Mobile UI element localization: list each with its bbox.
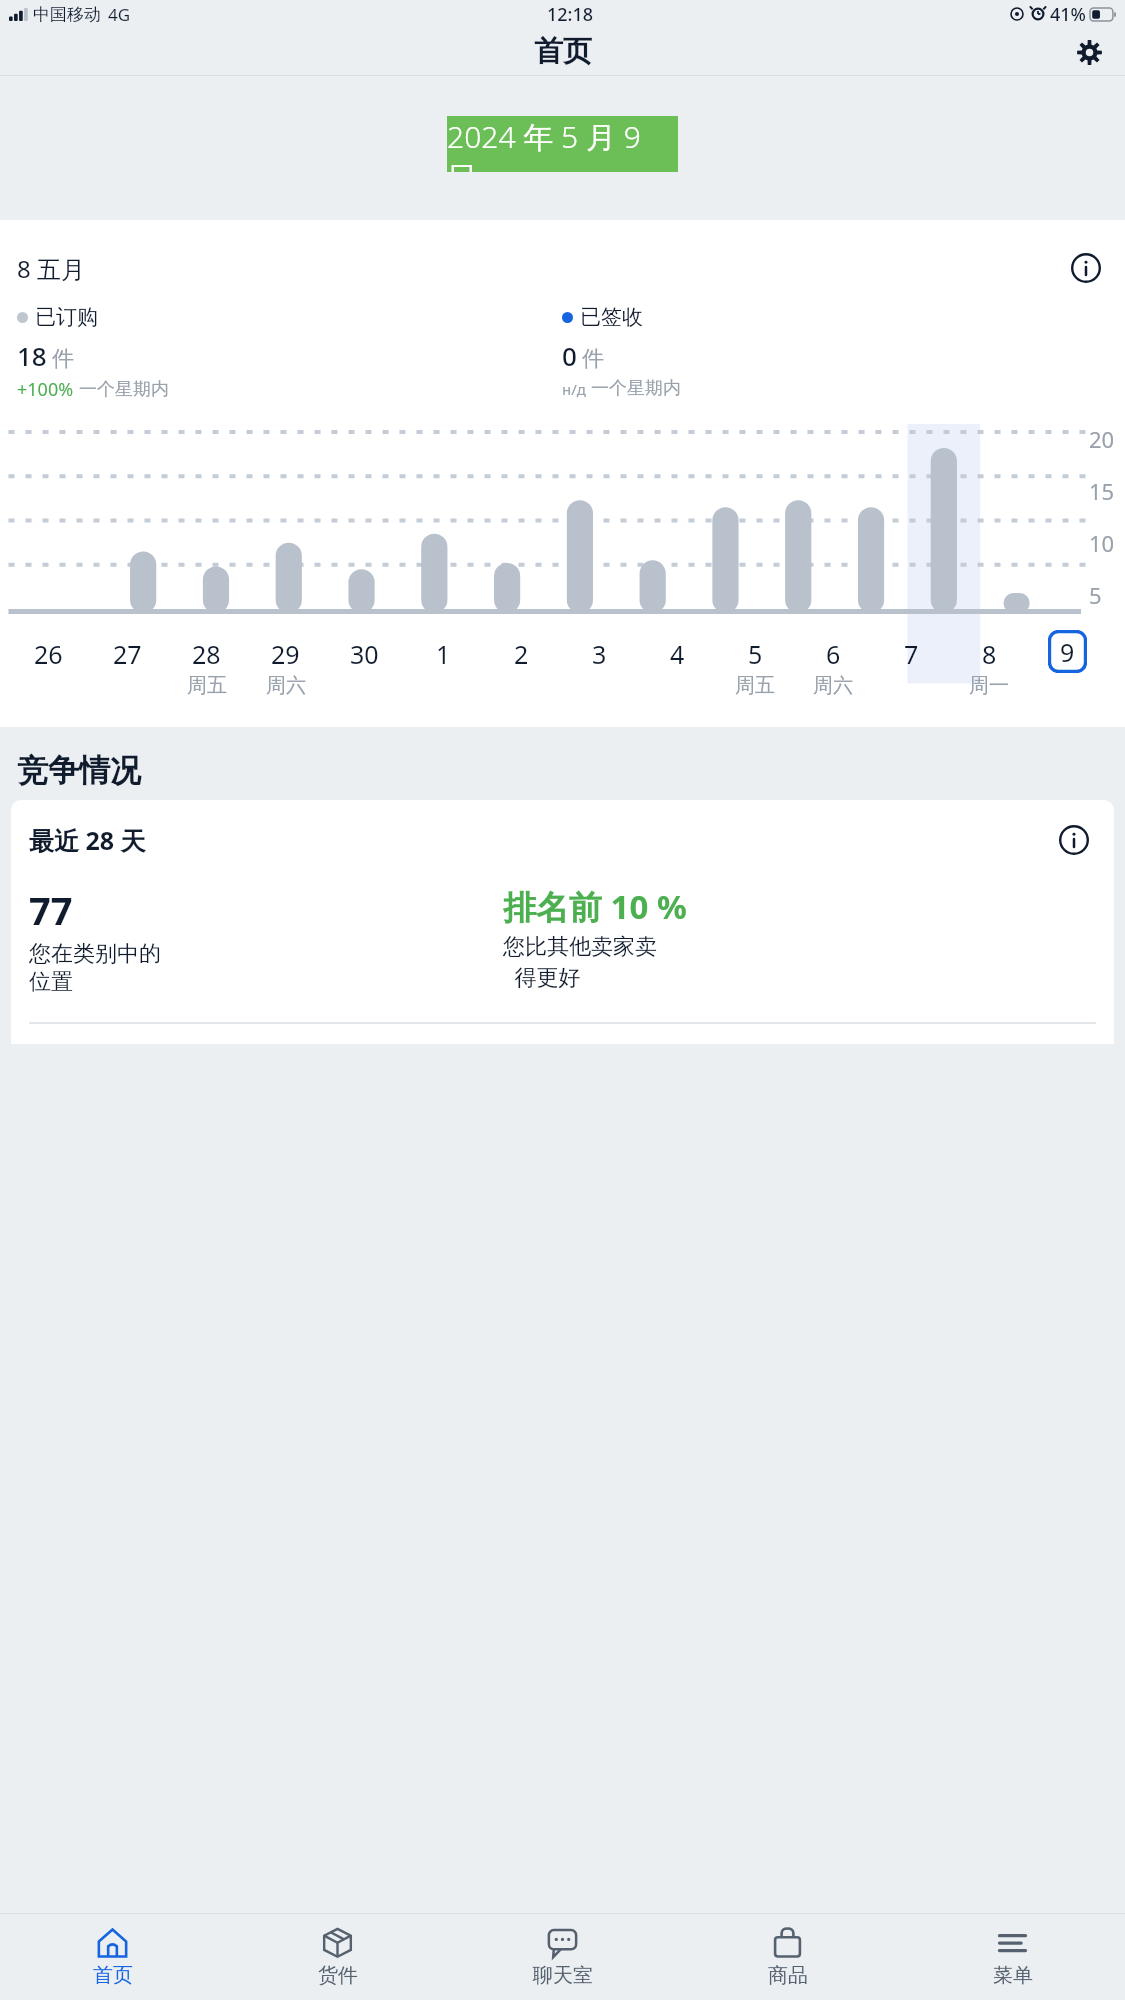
- button[interactable]: 信息: [1052, 818, 1096, 862]
- staticText: 件: [582, 345, 604, 373]
- staticText: 件: [52, 345, 74, 373]
- staticText: 最近 28 天: [29, 823, 146, 857]
- staticText: 2024 年 5 月 9 日: [447, 116, 678, 172]
- staticText: 26: [34, 637, 63, 671]
- staticText: 菜单: [993, 1963, 1033, 1988]
- staticText: 竞争情况: [17, 751, 141, 790]
- staticText: 周五: [735, 673, 775, 698]
- staticText: 位置: [29, 968, 73, 996]
- staticText: 周五: [187, 673, 227, 698]
- staticText: 77: [29, 884, 73, 936]
- staticText: 周一: [969, 673, 1009, 698]
- staticText: 15: [1089, 476, 1115, 506]
- staticText: 一个星期内: [591, 377, 681, 400]
- staticText: 5: [1089, 580, 1102, 610]
- staticText: 8: [982, 637, 997, 671]
- staticText: 2: [514, 637, 529, 671]
- staticText: 30: [350, 637, 379, 671]
- staticText: 周六: [266, 673, 306, 698]
- button[interactable]: 信息: [1064, 246, 1108, 290]
- staticText: 28: [192, 637, 221, 671]
- staticText: 7: [904, 637, 919, 671]
- staticText: 周六: [813, 673, 853, 698]
- staticText: 首页: [93, 1963, 133, 1988]
- staticText: 0: [562, 338, 577, 373]
- staticText: 货件: [318, 1963, 358, 1988]
- staticText: 29: [271, 637, 300, 671]
- staticText: 一个星期内: [79, 378, 169, 401]
- button[interactable]: 聊天室: [450, 1914, 675, 2000]
- staticText: 已订购: [35, 304, 98, 330]
- staticText: 已签收: [580, 304, 643, 330]
- staticText: 10: [1089, 528, 1115, 558]
- staticText: 9: [1060, 635, 1075, 669]
- staticText: 27: [113, 637, 142, 671]
- staticText: н/д: [562, 379, 586, 399]
- staticText: 12:18: [547, 2, 594, 27]
- staticText: 4: [670, 637, 685, 671]
- staticText: 您比其他卖家卖: [503, 933, 657, 961]
- staticText: 41%: [1050, 2, 1086, 27]
- staticText: 商品: [768, 1963, 808, 1988]
- button[interactable]: 商品: [675, 1914, 900, 2000]
- staticText: 3: [592, 637, 607, 671]
- staticText: 18: [17, 338, 47, 373]
- staticText: 5: [748, 637, 763, 671]
- staticText: 20: [1089, 424, 1115, 454]
- staticText: 聊天室: [533, 1963, 593, 1988]
- button[interactable]: 菜单: [900, 1914, 1125, 2000]
- button[interactable]: 货件: [225, 1914, 450, 2000]
- button[interactable]: 首页: [0, 1914, 225, 2000]
- staticText: 6: [826, 637, 841, 671]
- staticText: 排名前 10 %: [503, 884, 687, 929]
- button[interactable]: 设置: [1069, 32, 1109, 72]
- staticText: 得更好: [503, 961, 581, 991]
- staticText: +100%: [17, 377, 74, 402]
- staticText: 中国移动: [33, 4, 101, 25]
- staticText: 首页: [534, 33, 592, 70]
- staticText: 4G: [108, 3, 131, 26]
- staticText: 8 五月: [17, 252, 85, 285]
- staticText: 您在类别中的: [29, 940, 161, 968]
- staticText: 1: [436, 637, 451, 671]
